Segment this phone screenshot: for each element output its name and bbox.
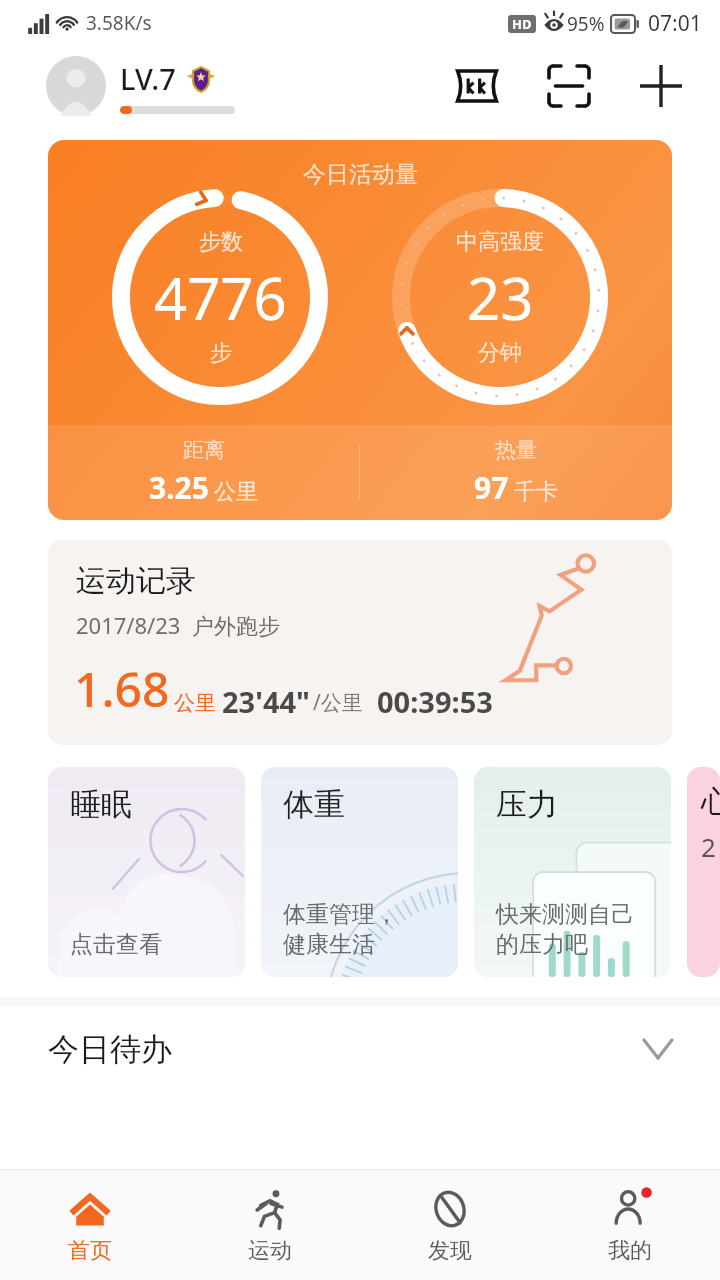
staticText: 压力: [496, 785, 558, 824]
staticText: 千卡: [514, 478, 558, 506]
staticText: 今日待办: [48, 1030, 172, 1069]
button[interactable]: 体重: [261, 767, 458, 977]
button[interactable]: 今日待办: [0, 1006, 720, 1092]
staticText: LV.7: [120, 59, 176, 98]
staticText: 1.68: [74, 656, 170, 721]
staticText: 步数: [199, 228, 243, 256]
staticText: HD: [512, 15, 532, 33]
staticText: 3.58K/s: [86, 10, 152, 36]
staticText: 点击查看: [70, 930, 162, 959]
staticText: 97: [474, 467, 509, 508]
staticText: 距离: [183, 437, 225, 463]
staticText: 公里: [214, 478, 258, 506]
button[interactable]: 心: [687, 767, 720, 977]
staticText: /公里: [313, 688, 363, 717]
staticText: 体重管理， 健康生活: [283, 900, 398, 959]
staticText: 运动: [248, 1237, 292, 1265]
staticText: 快来测测自己 的压力吧: [496, 900, 634, 959]
button[interactable]: 压力: [474, 767, 671, 977]
staticText: 3.25: [149, 467, 209, 508]
button[interactable]: 今日活动量: [48, 140, 672, 520]
staticText: 23: [467, 258, 534, 337]
staticText: 4776: [154, 258, 287, 337]
staticText: 00:39:53: [377, 682, 493, 721]
staticText: 我的: [608, 1237, 652, 1265]
staticText: 分钟: [478, 339, 522, 367]
button[interactable]: 运动记录: [48, 540, 672, 745]
staticText: 2017/8/23 户外跑步: [76, 610, 280, 640]
staticText: 热量: [495, 437, 537, 463]
button[interactable]: Scan: [538, 55, 600, 117]
button[interactable]: 发现: [360, 1170, 540, 1280]
button[interactable]: KK coupon: [446, 55, 508, 117]
staticText: 体重: [283, 785, 345, 824]
staticText: 中高强度: [456, 228, 544, 256]
button[interactable]: 睡眠: [48, 767, 245, 977]
staticText: 今日活动量: [303, 160, 418, 189]
button[interactable]: LV.7: [46, 56, 235, 116]
staticText: 95%: [567, 11, 605, 37]
staticText: 2: [701, 829, 716, 864]
staticText: 公里: [174, 690, 216, 716]
staticText: 步: [210, 339, 232, 367]
staticText: 首页: [68, 1237, 112, 1265]
staticText: 07:01: [648, 9, 702, 38]
staticText: 运动记录: [76, 562, 196, 600]
button[interactable]: 运动: [180, 1170, 360, 1280]
staticText: 睡眠: [70, 785, 132, 824]
button[interactable]: Add: [630, 55, 692, 117]
button[interactable]: 我的: [540, 1170, 720, 1280]
staticText: 23'44": [222, 682, 310, 721]
staticText: 心: [701, 783, 720, 821]
staticText: 发现: [428, 1237, 472, 1265]
button[interactable]: 首页: [0, 1170, 180, 1280]
